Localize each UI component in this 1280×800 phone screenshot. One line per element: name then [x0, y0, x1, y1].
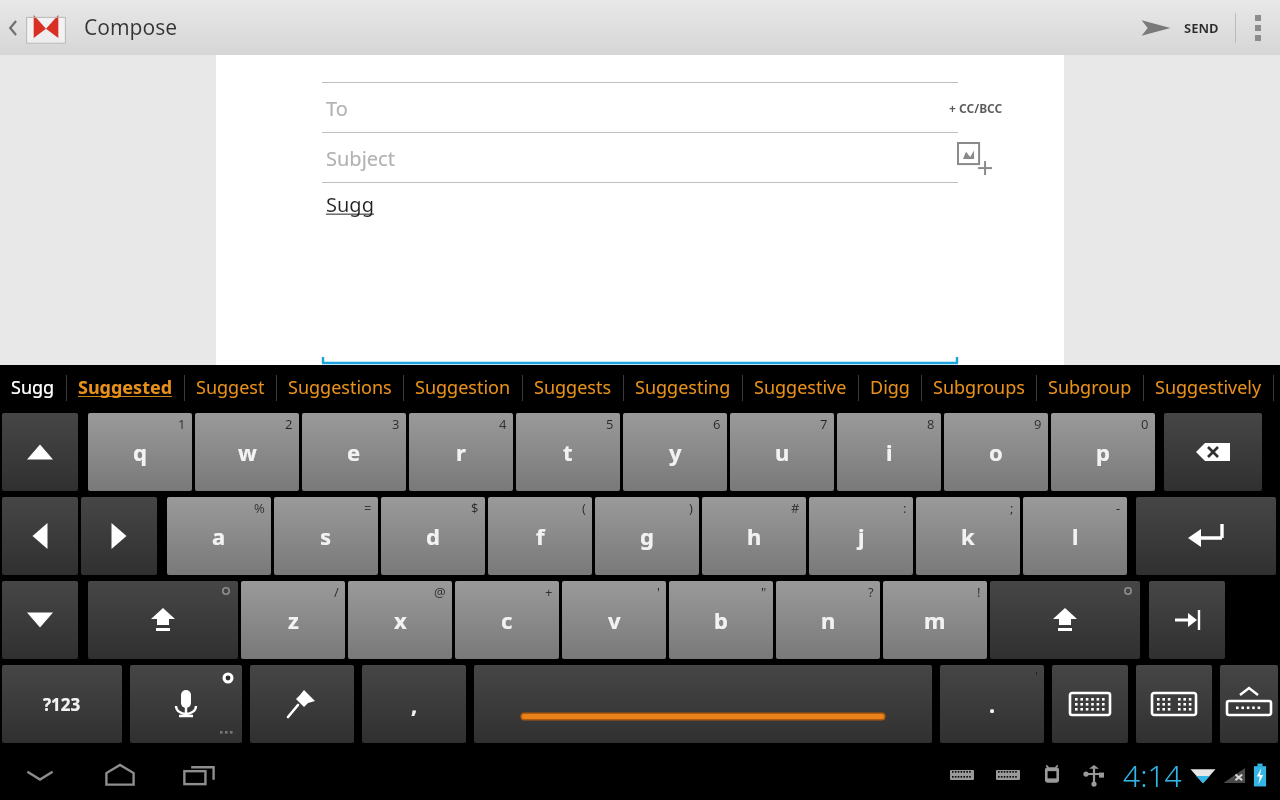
button[interactable]: Suggestive [743, 365, 858, 410]
button[interactable]: Up [0, 0, 74, 55]
button[interactable]: Switch keyboard [1136, 665, 1212, 743]
button[interactable]: To [216, 83, 1064, 133]
button[interactable]: Suggestion [404, 365, 522, 410]
button[interactable]: r [409, 413, 513, 491]
staticText: @ [434, 583, 446, 601]
button[interactable]: l [1023, 497, 1127, 575]
staticText: 3 [392, 415, 400, 433]
staticText: 1 [178, 415, 186, 433]
staticText: r [456, 437, 466, 467]
button[interactable]: d [381, 497, 485, 575]
staticText: 4:14 [1123, 755, 1182, 796]
button[interactable]: Subject [216, 133, 1064, 183]
button[interactable]: ?123 [2, 665, 122, 743]
button[interactable]: Tab [1149, 581, 1225, 659]
staticText: l [1072, 521, 1079, 551]
button[interactable]: b [669, 581, 773, 659]
staticText: Sugg [326, 191, 374, 218]
button[interactable]: Suggestively [1144, 365, 1273, 410]
button[interactable]: Suggest [185, 365, 276, 410]
button[interactable]: j [809, 497, 913, 575]
button[interactable]: Sugg [216, 183, 1064, 365]
staticText: # [791, 499, 800, 517]
button[interactable]: Suggesting [624, 365, 742, 410]
staticText: 8 [927, 415, 935, 433]
staticText: . [989, 689, 996, 719]
staticText: Suggestions [288, 375, 392, 400]
button[interactable]: Move right [81, 497, 157, 575]
button[interactable]: Suggested [67, 365, 184, 410]
staticText: ! [977, 583, 981, 601]
button[interactable]: , [362, 665, 466, 743]
button[interactable]: More options [1236, 0, 1280, 55]
button[interactable]: c [455, 581, 559, 659]
staticText: s [320, 521, 332, 551]
button[interactable]: Subgroup [1037, 365, 1143, 410]
button[interactable]: Digg [859, 365, 921, 410]
button[interactable]: g [595, 497, 699, 575]
staticText: n [821, 605, 836, 635]
button[interactable]: Hide keyboard [1220, 665, 1278, 743]
button[interactable]: Delete [1164, 413, 1262, 491]
button[interactable]: Enter [1136, 497, 1276, 575]
staticText: b [714, 605, 728, 635]
button[interactable]: k [916, 497, 1020, 575]
button[interactable]: p [1051, 413, 1155, 491]
button[interactable]: Pin [250, 665, 354, 743]
button[interactable]: h [702, 497, 806, 575]
button[interactable]: Space [474, 665, 932, 743]
button[interactable]: e [302, 413, 406, 491]
button[interactable]: x [348, 581, 452, 659]
staticText: 4 [499, 415, 507, 433]
staticText: 7 [820, 415, 828, 433]
staticText: 9 [1034, 415, 1042, 433]
button[interactable]: . [940, 665, 1044, 743]
button[interactable]: z [241, 581, 345, 659]
staticText: m [924, 605, 946, 635]
staticText: Subject [326, 145, 395, 172]
button[interactable]: SEND [1124, 0, 1235, 55]
staticText: u [775, 437, 790, 467]
button[interactable]: n [776, 581, 880, 659]
staticText: i [886, 437, 893, 467]
button[interactable]: u [730, 413, 834, 491]
staticText: Suggests [534, 375, 612, 400]
staticText: Subgroups [933, 375, 1025, 400]
button[interactable]: a [167, 497, 271, 575]
button[interactable]: o [944, 413, 1048, 491]
button[interactable]: Suggests [523, 365, 623, 410]
button[interactable]: Shift [990, 581, 1140, 659]
button[interactable]: Recent apps [160, 750, 240, 800]
button[interactable]: v [562, 581, 666, 659]
staticText: SEND [1184, 19, 1219, 37]
button[interactable]: t [516, 413, 620, 491]
button[interactable]: Keyboard layout [1052, 665, 1128, 743]
button[interactable]: Suggestions [277, 365, 403, 410]
staticText: " [761, 583, 767, 601]
button[interactable]: Move down [2, 581, 78, 659]
button[interactable]: Back [0, 750, 80, 800]
button[interactable]: y [623, 413, 727, 491]
staticText: Subgroup [1048, 375, 1132, 400]
button[interactable]: f [488, 497, 592, 575]
button[interactable]: i [837, 413, 941, 491]
button[interactable]: Move up [2, 413, 78, 491]
staticText: ?123 [43, 693, 81, 716]
button[interactable]: w [195, 413, 299, 491]
staticText: Suggestively [1155, 375, 1262, 400]
button[interactable]: Subgroups [922, 365, 1036, 410]
button[interactable]: Voice input [130, 665, 242, 743]
button[interactable]: s [274, 497, 378, 575]
button[interactable]: Move left [2, 497, 78, 575]
button[interactable]: q [88, 413, 192, 491]
button[interactable]: Shift [88, 581, 238, 659]
staticText: = [364, 499, 372, 517]
button[interactable]: + CC/BCC [949, 100, 1003, 116]
button[interactable]: Attach image [956, 141, 990, 175]
staticText: w [238, 437, 257, 467]
button[interactable]: Home [80, 750, 160, 800]
button[interactable]: m [883, 581, 987, 659]
button[interactable]: Sugg [0, 365, 66, 410]
staticText: q [133, 437, 147, 467]
